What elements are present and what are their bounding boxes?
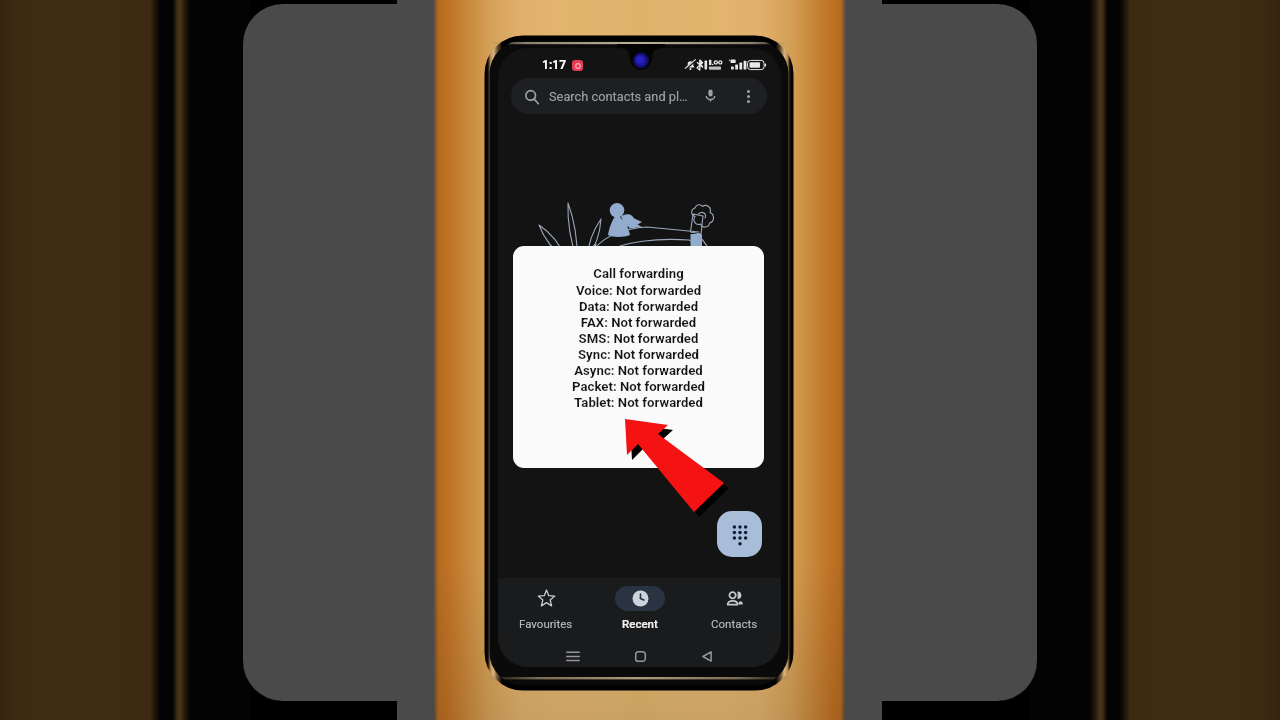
button[interactable]: Favourites [498, 578, 593, 635]
staticText: Search contacts and pl… [549, 89, 688, 104]
button[interactable]: Recents [549, 643, 597, 667]
button[interactable]: Home [616, 643, 664, 667]
button[interactable]: Back [683, 643, 731, 667]
button[interactable]: Dialpad [717, 511, 762, 557]
staticText: Contacts [711, 617, 758, 630]
button[interactable]: Search contacts and pl… [511, 78, 767, 114]
button[interactable]: Recent [593, 578, 687, 635]
staticText: 1:17 [542, 58, 567, 72]
other: More options [741, 89, 756, 104]
staticText: Favourites [519, 617, 573, 630]
staticText: Call forwarding Voice: Not forwarded Dat… [513, 266, 764, 410]
button[interactable]: Contacts [687, 578, 781, 635]
staticText: Recent [622, 617, 658, 630]
